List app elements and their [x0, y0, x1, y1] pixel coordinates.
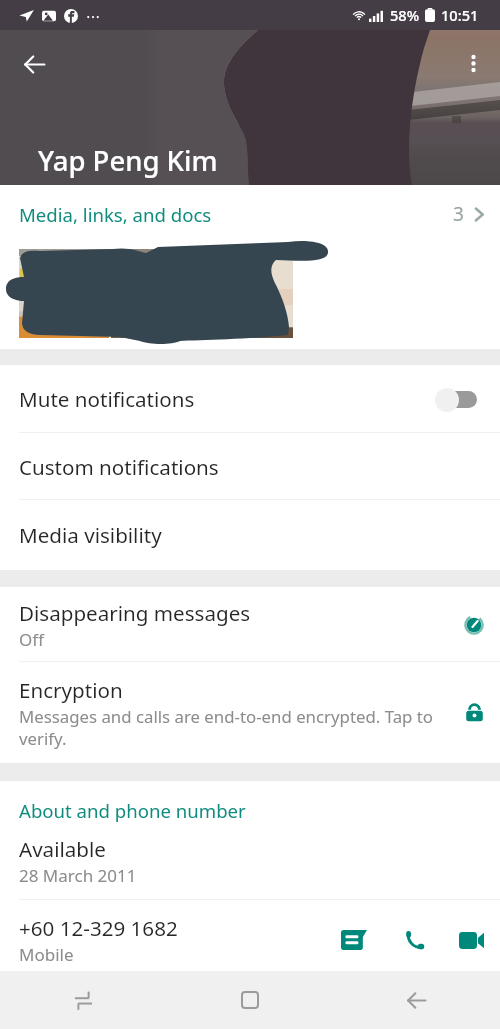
staticText: 10:51: [441, 5, 479, 25]
staticText: Media visibility: [19, 521, 162, 549]
button[interactable]: Encryption: [0, 662, 500, 763]
staticText: About and phone number: [19, 798, 246, 823]
button[interactable]: Video call: [450, 919, 492, 961]
button[interactable]: Back: [12, 42, 56, 86]
button[interactable]: Back: [333, 971, 500, 1029]
staticText: Available: [19, 835, 106, 863]
staticText: 3: [453, 201, 464, 227]
button[interactable]: Mute notifications: [0, 365, 500, 433]
button[interactable]: Media visibility: [0, 500, 500, 570]
staticText: Messages and calls are end-to-end encryp…: [19, 705, 433, 750]
button[interactable]: Home: [166, 971, 333, 1029]
button[interactable]: Disappearing messages: [0, 587, 500, 662]
button[interactable]: Message: [333, 919, 375, 961]
staticText: Media, links, and docs: [19, 202, 212, 227]
button[interactable]: Recents: [0, 971, 166, 1029]
button[interactable]: Available: [0, 828, 500, 900]
button[interactable]: Custom notifications: [0, 433, 500, 500]
button[interactable]: Media, links, and docs: [0, 185, 500, 243]
button[interactable]: More options: [451, 41, 495, 85]
staticText: Custom notifications: [19, 453, 219, 481]
staticText: Disappearing messages: [19, 599, 251, 627]
staticText: 58%: [390, 5, 420, 25]
staticText: 28 March 2011: [19, 864, 137, 887]
staticText: Mobile: [19, 943, 74, 966]
staticText: Yap Peng Kim: [38, 142, 218, 179]
staticText: Mute notifications: [19, 385, 195, 413]
button[interactable]: Call: [394, 919, 436, 961]
staticText: Encryption: [19, 676, 123, 704]
staticText: Off: [19, 628, 44, 651]
staticText: +60 12-329 1682: [19, 914, 178, 942]
